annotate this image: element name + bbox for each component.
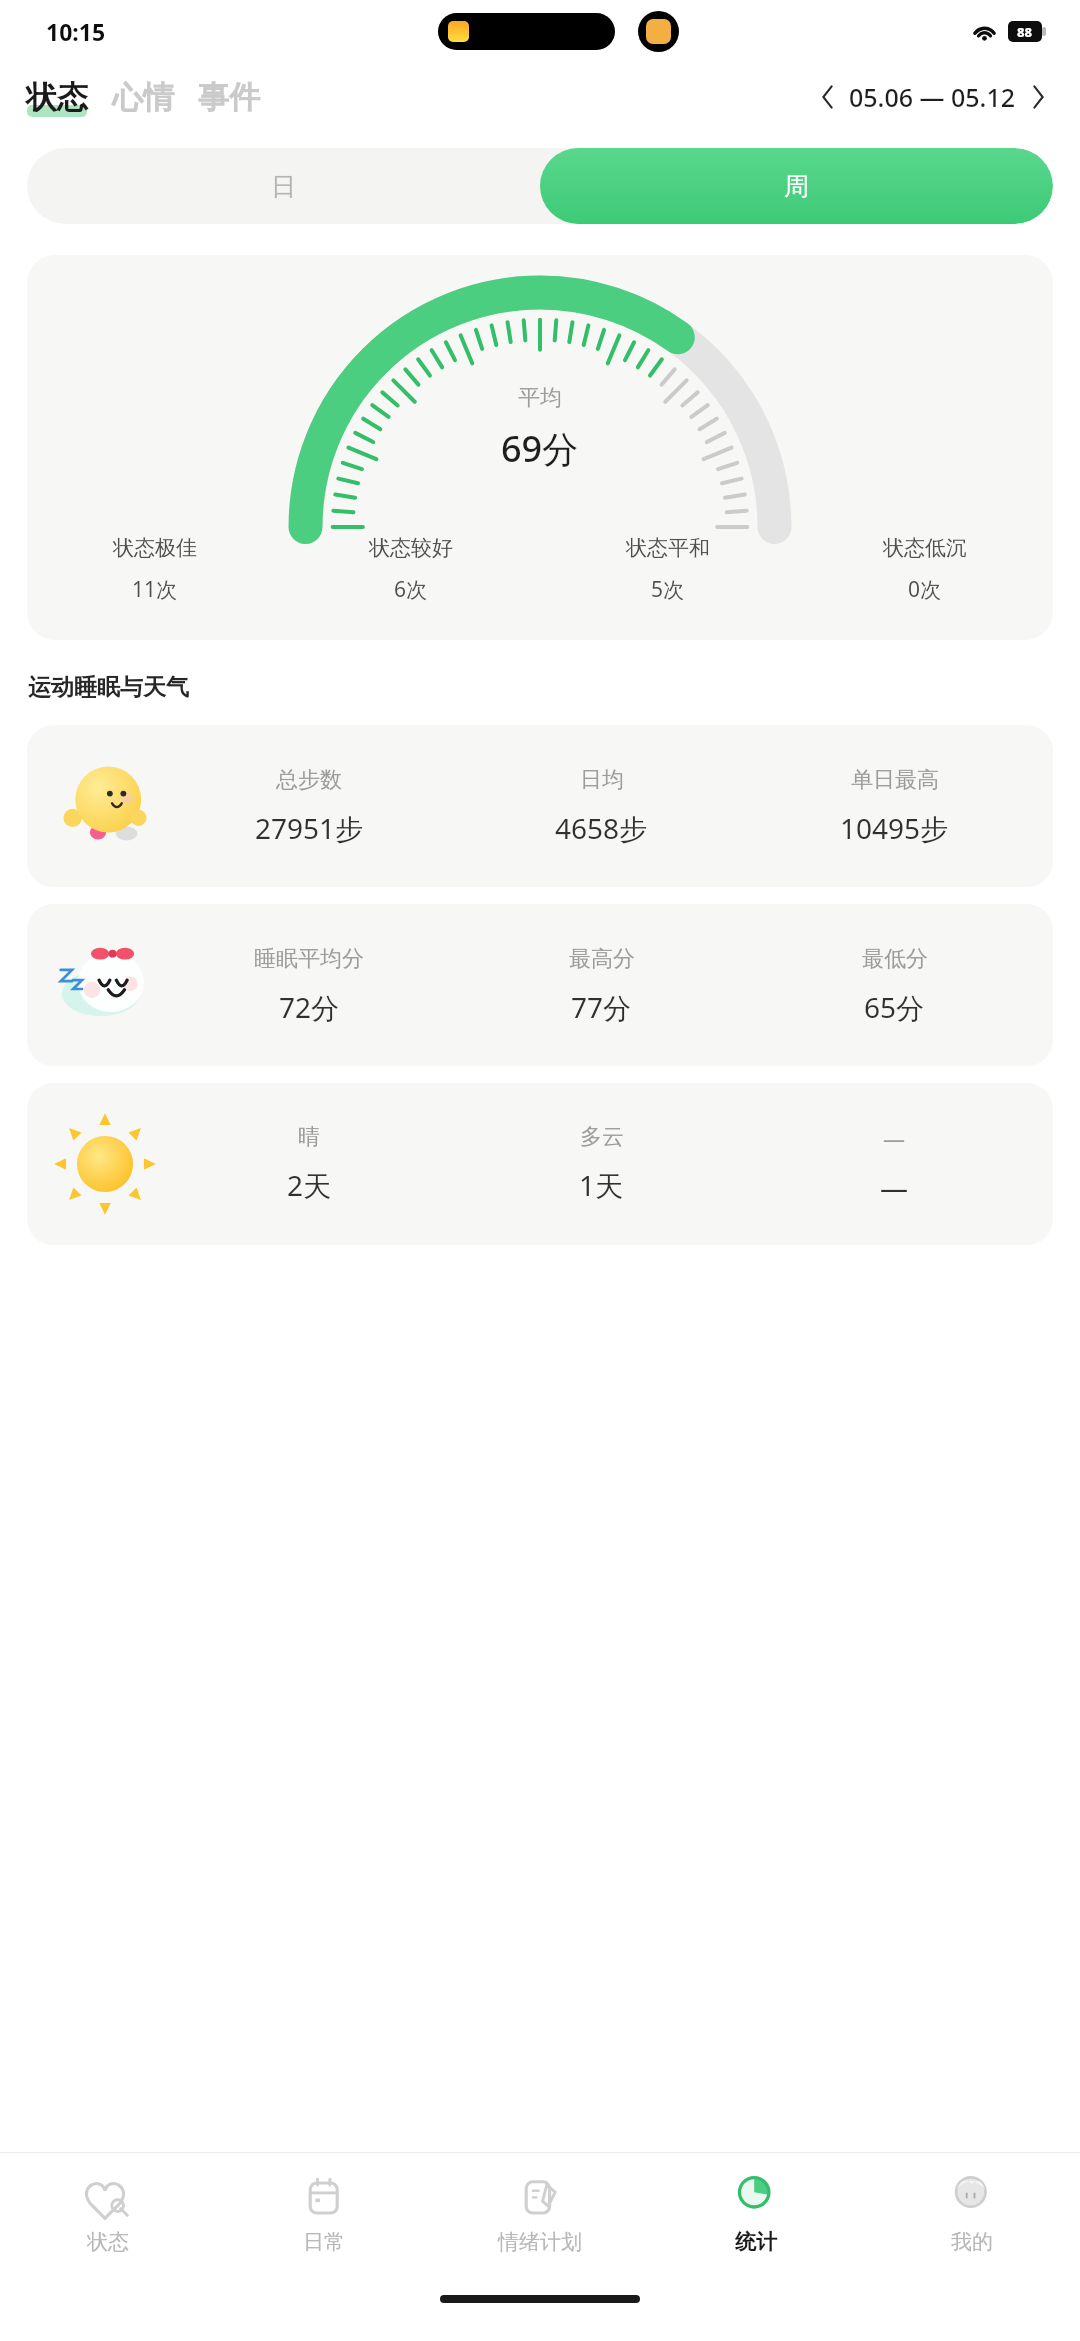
button[interactable]: 晴 (27, 1083, 1053, 1245)
staticText: 77分 (571, 988, 632, 1026)
staticText: 心情 (112, 78, 174, 117)
button[interactable]: 日 (27, 148, 540, 224)
staticText: 情绪计划 (498, 2229, 582, 2255)
staticText: 平均 (518, 384, 562, 412)
button[interactable]: 状态 (26, 78, 88, 117)
staticText: 睡眠平均分 (254, 945, 364, 973)
staticText: 事件 (198, 78, 260, 117)
button[interactable]: 上一周 (809, 79, 845, 115)
button[interactable]: 我的 (864, 2153, 1080, 2295)
staticText: 日 (271, 171, 296, 202)
staticText: 10:15 (46, 16, 106, 47)
staticText: 1天 (579, 1166, 624, 1204)
staticText: 状态 (26, 78, 88, 117)
staticText: 状态 (87, 2229, 129, 2255)
button[interactable]: 统计 (648, 2153, 864, 2295)
staticText: 72分 (279, 988, 340, 1026)
staticText: 0次 (908, 575, 942, 604)
staticText: 状态极佳 (113, 535, 197, 561)
staticText: 状态平和 (626, 535, 710, 561)
staticText: 2天 (287, 1166, 332, 1204)
staticText: 最高分 (569, 945, 635, 973)
staticText: 10495步 (840, 809, 949, 847)
staticText: 单日最高 (851, 766, 939, 794)
staticText: 多云 (580, 1123, 624, 1151)
staticText: 晴 (298, 1123, 320, 1151)
staticText: 日均 (580, 766, 624, 794)
staticText: 状态较好 (369, 535, 453, 561)
staticText: 27951步 (255, 809, 364, 847)
staticText: 最低分 (862, 945, 928, 973)
staticText: 4658步 (555, 809, 648, 847)
button[interactable]: 05.06 — 05.12 (849, 80, 1016, 114)
staticText: — (880, 1168, 909, 1206)
staticText: 6次 (394, 575, 428, 604)
button[interactable]: 事件 (198, 78, 260, 117)
button[interactable]: 日常 (216, 2153, 432, 2295)
staticText: 11次 (132, 575, 178, 604)
button[interactable]: 状态 (0, 2153, 216, 2295)
button[interactable]: 情绪计划 (432, 2153, 648, 2295)
staticText: 88 (1017, 23, 1033, 41)
staticText: 65分 (864, 988, 925, 1026)
staticText: 周 (784, 171, 809, 202)
staticText: 日常 (303, 2229, 345, 2255)
button[interactable]: 下一周 (1020, 79, 1056, 115)
staticText: 69分 (501, 424, 579, 473)
staticText: 5次 (651, 575, 685, 604)
staticText: — (883, 1123, 906, 1153)
staticText: 状态低沉 (883, 535, 967, 561)
button[interactable]: 周 (540, 148, 1053, 224)
button[interactable]: 总步数 (27, 725, 1053, 887)
staticText: 总步数 (276, 766, 342, 794)
staticText: 统计 (735, 2229, 777, 2255)
staticText: 我的 (951, 2229, 993, 2255)
button[interactable]: 睡眠平均分 (27, 904, 1053, 1066)
staticText: 运动睡眠与天气 (28, 673, 189, 702)
button[interactable]: 心情 (112, 78, 174, 117)
